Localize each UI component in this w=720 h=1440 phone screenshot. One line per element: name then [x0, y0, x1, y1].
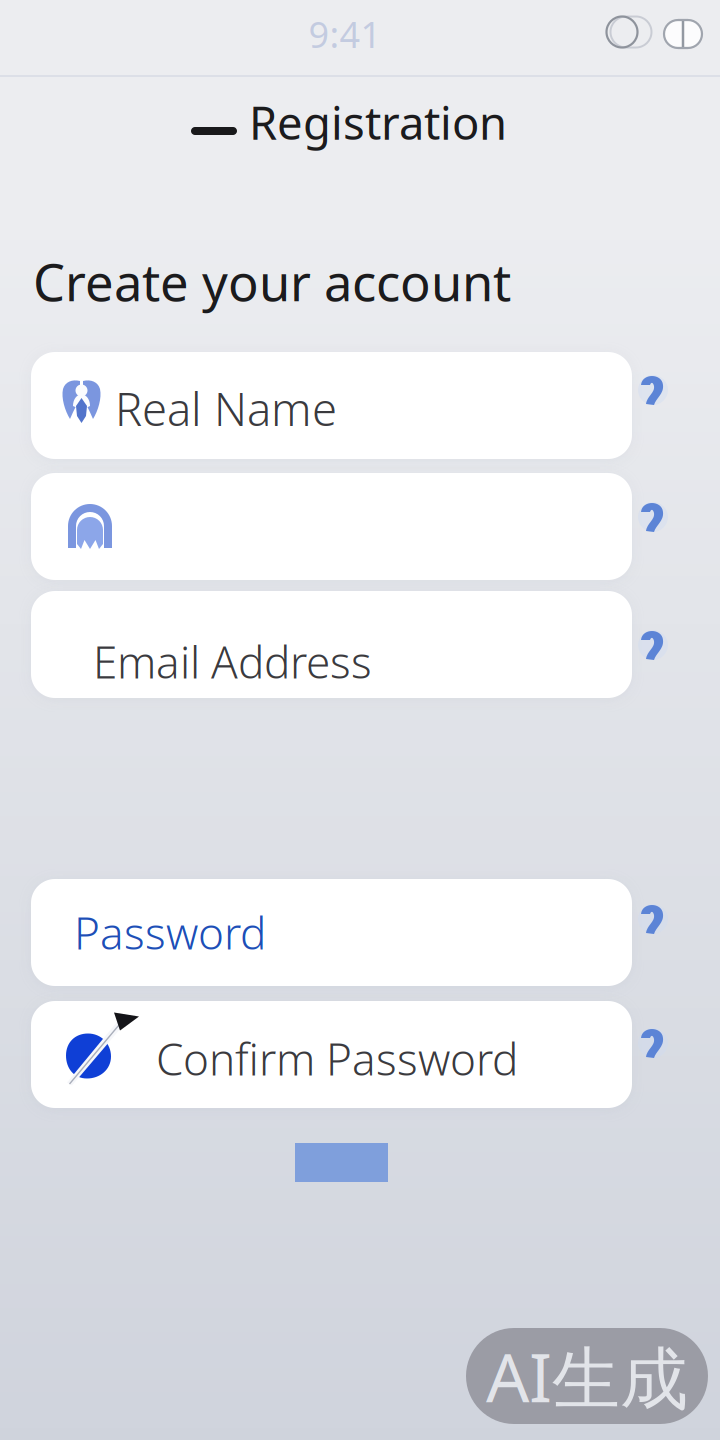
staticText: Registration — [249, 92, 507, 152]
button[interactable]: Battery — [662, 18, 704, 50]
button[interactable]: Confirm Password — [31, 1001, 632, 1108]
button[interactable]: Email Address — [31, 591, 632, 698]
button[interactable]: Password help — [640, 904, 670, 936]
button[interactable] — [31, 473, 632, 580]
staticText: Confirm Password — [156, 1029, 518, 1088]
staticText: Password — [74, 903, 266, 962]
button[interactable]: Real Name — [31, 352, 632, 459]
button[interactable]: Confirm password help — [640, 1028, 670, 1060]
staticText: Email Address — [93, 632, 372, 691]
staticText: AI生成 — [486, 1331, 688, 1421]
button[interactable]: Password — [31, 879, 632, 986]
button[interactable]: Cellular — [604, 15, 650, 49]
button[interactable]: Real name help — [640, 375, 670, 407]
staticText: Create your account — [33, 248, 511, 315]
button[interactable]: Phone number help — [640, 502, 670, 534]
staticText: Real Name — [115, 378, 337, 439]
staticText: 9:41 — [308, 10, 381, 58]
button[interactable]: Email address help — [640, 630, 670, 662]
button[interactable]: Back — [191, 127, 237, 135]
